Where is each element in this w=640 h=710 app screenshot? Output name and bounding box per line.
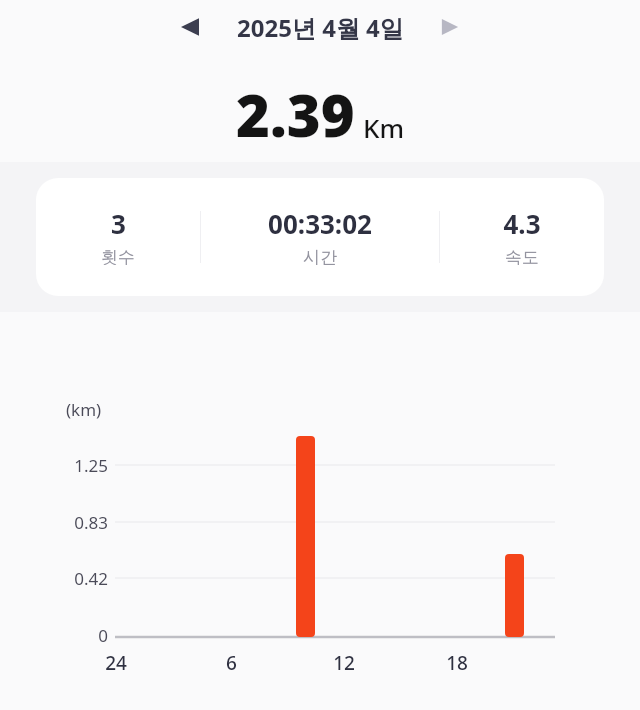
staticText: 6 [226, 650, 237, 676]
staticText: Km [363, 110, 405, 145]
staticText: (km) [66, 398, 102, 421]
staticText: 0.42 [74, 567, 108, 590]
staticText: 4.3 [503, 206, 541, 241]
staticText: 시간 [303, 247, 337, 268]
staticText: 횟수 [101, 247, 135, 268]
staticText: 3 [111, 206, 126, 241]
staticText: 2.39 [236, 75, 355, 154]
button[interactable]: Previous day [168, 5, 212, 49]
staticText: 12 [333, 650, 355, 676]
staticText: 00:33:02 [268, 206, 372, 241]
staticText: 속도 [505, 247, 539, 268]
staticText: 1.25 [74, 454, 108, 477]
staticText: 18 [446, 650, 468, 676]
staticText: 2025년 4월 4일 [237, 11, 404, 44]
staticText: 0 [98, 624, 108, 647]
button[interactable]: Next day [428, 5, 472, 49]
button[interactable]: 3 [36, 178, 604, 296]
staticText: 0.83 [74, 511, 108, 534]
staticText: 24 [105, 650, 127, 676]
